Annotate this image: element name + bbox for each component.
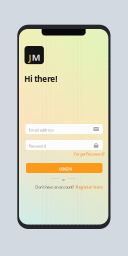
staticText: LOGIN xyxy=(59,166,72,171)
staticText: Register here xyxy=(75,184,102,190)
button[interactable]: Email address xyxy=(25,124,103,134)
button[interactable]: Forgot Password? xyxy=(74,151,105,157)
staticText: M xyxy=(32,51,41,63)
staticText: J xyxy=(28,51,31,63)
staticText: Password xyxy=(29,143,46,149)
staticText: Don't have an account? xyxy=(35,184,74,190)
staticText: or xyxy=(61,177,65,182)
staticText: Forgot Password? xyxy=(74,151,105,157)
staticText: Hi there! xyxy=(24,73,57,84)
button[interactable]: LOGIN xyxy=(26,163,102,173)
staticText: Email address xyxy=(29,127,54,133)
button[interactable]: Register here xyxy=(75,184,102,190)
button[interactable]: Password xyxy=(25,140,103,150)
